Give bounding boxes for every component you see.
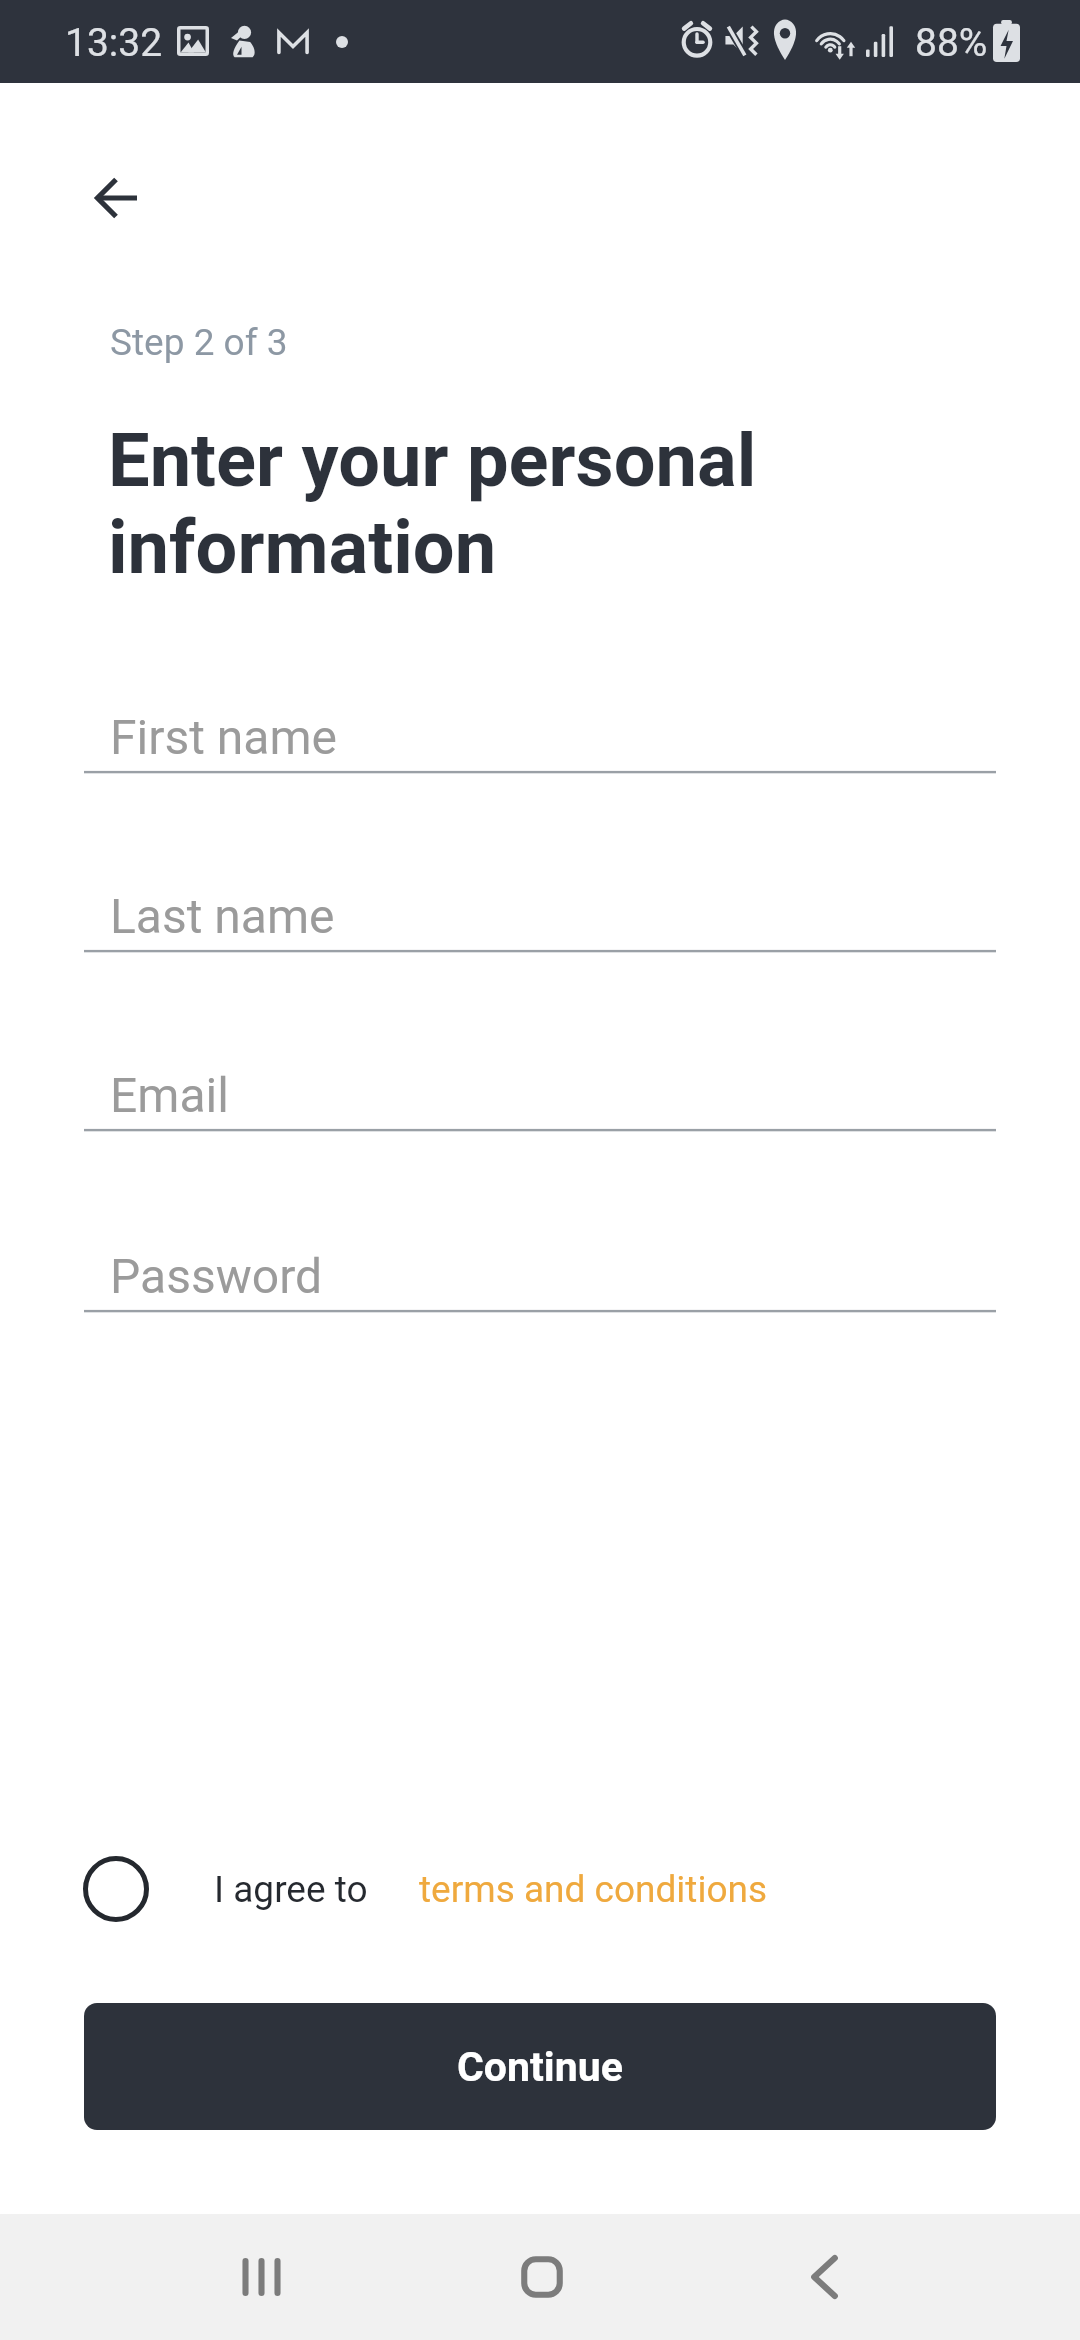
staticText: I agree to — [214, 1868, 368, 1911]
button[interactable]: Back — [762, 2214, 882, 2340]
button[interactable]: Back — [68, 150, 164, 246]
staticText: Step 2 of 3 — [110, 321, 288, 364]
button[interactable]: Email — [84, 1061, 996, 1133]
button[interactable]: Agree checkbox — [74, 1847, 368, 1931]
staticText: Password — [110, 1248, 323, 1304]
staticText: Email — [110, 1067, 229, 1123]
button[interactable]: Password — [84, 1242, 996, 1314]
staticText: Continue — [457, 2043, 623, 2091]
staticText: First name — [110, 709, 338, 765]
staticText: 88% — [915, 20, 988, 66]
button[interactable]: Recent apps — [200, 2214, 320, 2340]
staticText: Last name — [110, 888, 335, 944]
button[interactable]: Continue — [84, 2003, 996, 2130]
button[interactable]: Last name — [84, 882, 996, 954]
button[interactable]: Home — [482, 2214, 602, 2340]
staticText: Enter your personal information — [108, 417, 808, 591]
other: Agree checkbox — [74, 1847, 158, 1931]
button[interactable]: First name — [84, 703, 996, 775]
button[interactable]: terms and conditions — [419, 1847, 768, 1931]
staticText: terms and conditions — [419, 1868, 768, 1911]
staticText: 13:32 — [65, 20, 163, 66]
